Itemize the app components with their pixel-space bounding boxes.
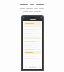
button[interactable] <box>24 51 41 54</box>
button[interactable] <box>24 28 41 30</box>
button[interactable] <box>24 30 41 32</box>
button[interactable] <box>24 48 41 50</box>
button[interactable] <box>24 34 41 36</box>
button[interactable] <box>24 42 41 44</box>
button[interactable]: Activity <box>34 65 37 69</box>
button[interactable] <box>24 40 41 42</box>
button[interactable] <box>24 55 41 57</box>
button[interactable] <box>0 4 64 5</box>
button[interactable] <box>24 22 41 27</box>
button[interactable]: Saved <box>31 65 34 69</box>
button[interactable] <box>24 46 41 48</box>
button[interactable] <box>24 57 41 59</box>
button[interactable]: Search <box>28 65 31 69</box>
button[interactable]: Profile <box>38 65 41 69</box>
button[interactable]: Home <box>24 65 27 69</box>
button[interactable] <box>24 32 41 34</box>
button[interactable] <box>24 44 41 46</box>
